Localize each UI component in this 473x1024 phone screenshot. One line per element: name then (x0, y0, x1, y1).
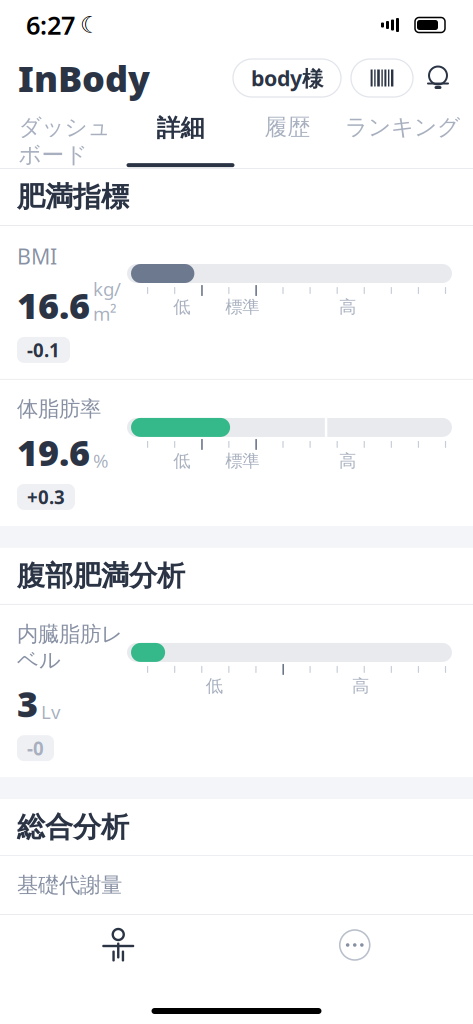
button[interactable]: Notifications (421, 59, 455, 97)
button[interactable]: Body (83, 917, 153, 973)
staticText: 低 (206, 675, 223, 697)
button[interactable]: 履歴 (237, 105, 337, 141)
staticText: 基礎代謝量 (17, 872, 122, 898)
staticText: 履歴 (264, 113, 310, 141)
staticText: kg/m² (93, 276, 121, 326)
staticText: Lv (41, 699, 60, 724)
staticText: body様 (251, 64, 323, 92)
staticText: 低 (173, 296, 190, 318)
staticText: ☾ (80, 12, 100, 38)
staticText: 低 (173, 450, 190, 472)
staticText: +0.3 (27, 484, 65, 509)
staticText: -0 (27, 736, 44, 760)
staticText: 詳細 (156, 113, 204, 143)
staticText: 腹部肥満分析 (17, 559, 185, 593)
button[interactable]: body様 (233, 59, 341, 97)
button[interactable]: 詳細 (123, 105, 237, 167)
staticText: 16.6 (17, 281, 90, 329)
button[interactable]: ランキング (337, 105, 467, 141)
staticText: BMI (17, 242, 57, 270)
button[interactable]: ダッシュボード (5, 105, 123, 169)
staticText: 19.6 (17, 428, 90, 476)
staticText: InBody (18, 54, 150, 102)
staticText: 標準 (225, 450, 259, 472)
staticText: 高 (339, 296, 356, 318)
staticText: 総合分析 (17, 810, 129, 844)
staticText: ダッシュボード (18, 113, 110, 169)
staticText: 内臓脂肪レベル (17, 621, 123, 673)
staticText: 標準 (225, 296, 259, 318)
staticText: 3 (17, 679, 38, 727)
staticText: % (93, 448, 109, 473)
button[interactable]: Barcode (351, 59, 413, 97)
staticText: 高 (339, 450, 356, 472)
staticText: 体脂肪率 (17, 396, 101, 422)
staticText: 高 (352, 675, 369, 697)
staticText: -0.1 (27, 337, 60, 362)
staticText: 肥満指標 (17, 180, 129, 214)
button[interactable]: More (320, 917, 390, 973)
staticText: ランキング (345, 113, 460, 141)
staticText: 6:27 (26, 8, 75, 42)
